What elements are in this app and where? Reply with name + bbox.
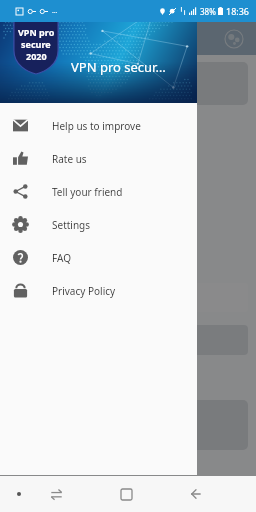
button[interactable]: Globe (224, 29, 244, 49)
staticText: 2020 (26, 50, 47, 62)
staticText: Privacy Policy (52, 284, 116, 298)
button[interactable]: Rate us (0, 142, 197, 175)
button[interactable]: Menu dot (8, 476, 30, 512)
staticText: Help us to improve (52, 119, 141, 133)
staticText: VPN pro secur… (71, 58, 166, 76)
button[interactable]: FAQ (0, 241, 197, 274)
staticText: Settings (52, 218, 91, 232)
button[interactable]: Home (114, 476, 138, 512)
staticText: 18:36 (226, 5, 250, 17)
staticText: VPN pro (18, 26, 55, 38)
button[interactable]: Help us to improve (0, 109, 197, 142)
button[interactable]: Tell your friend (0, 175, 197, 208)
button[interactable]: Recents (44, 476, 68, 512)
staticText: FAQ (52, 251, 71, 265)
staticText: 38% (200, 6, 216, 17)
staticText: secure (21, 38, 51, 50)
button[interactable]: Back (184, 476, 208, 512)
staticText: Tell your friend (52, 185, 123, 199)
button[interactable]: Privacy Policy (0, 274, 197, 307)
staticText: Rate us (52, 152, 87, 166)
staticText: … (52, 6, 58, 16)
staticText: Connect to a network, stay safe and soun… (84, 73, 173, 95)
button[interactable]: Settings (0, 208, 197, 241)
